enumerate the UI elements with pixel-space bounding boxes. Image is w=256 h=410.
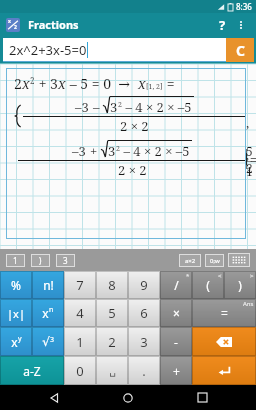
staticText: ( <box>206 277 210 293</box>
staticText: √ <box>42 335 50 349</box>
staticText: Fractions <box>28 17 79 32</box>
button[interactable]: = <box>192 299 256 327</box>
staticText: ) <box>238 277 242 293</box>
button[interactable]: 8 <box>96 271 128 299</box>
staticText: % <box>11 277 21 293</box>
button[interactable]: % <box>0 271 32 299</box>
staticText: 2 <box>14 74 22 93</box>
button[interactable]: ␣ <box>96 356 128 385</box>
button[interactable]: 2 <box>14 74 246 239</box>
staticText: [1, 2] <box>146 82 163 92</box>
staticText: n! <box>43 277 54 293</box>
button[interactable]: 5 <box>96 299 128 327</box>
staticText: × <box>173 305 180 321</box>
button[interactable]: ( <box>192 271 224 299</box>
button[interactable]: 0 <box>64 356 96 385</box>
button[interactable]: Help <box>212 15 232 35</box>
staticText: C <box>236 41 245 60</box>
staticText: 3 <box>108 142 116 160</box>
button[interactable]: 3 <box>128 327 160 356</box>
staticText: x <box>58 74 66 93</box>
staticText: 8 <box>108 276 116 294</box>
button[interactable]: 7 <box>64 271 96 299</box>
staticText: 2 × 2 <box>118 161 147 179</box>
staticText: ? <box>219 16 226 34</box>
button[interactable]: Backspace <box>192 327 256 356</box>
staticText: 0 <box>76 362 84 380</box>
staticText: + <box>173 363 180 379</box>
button[interactable]: 2x^2+3x-5=0 <box>3 38 226 62</box>
staticText: a×2 <box>185 257 196 265</box>
button[interactable]: 6 <box>128 299 160 327</box>
staticText: 2 <box>118 100 122 110</box>
staticText: x <box>22 74 30 93</box>
staticText: 2 <box>116 144 120 154</box>
staticText: 3 <box>50 335 55 345</box>
staticText: 3 <box>140 333 148 351</box>
staticText: –3 <box>72 142 90 160</box>
button[interactable]: √ <box>32 327 64 356</box>
staticText: x <box>8 18 11 25</box>
button[interactable]: |x| <box>0 299 32 327</box>
button[interactable]: 4 <box>64 299 96 327</box>
staticText: ) <box>39 255 42 266</box>
button[interactable]: More options <box>232 16 250 34</box>
staticText: Ans <box>243 300 254 308</box>
staticText: = <box>163 74 175 93</box>
staticText: < <box>218 272 222 280</box>
button[interactable]: Enter <box>192 356 256 385</box>
button[interactable]: a-Z <box>0 356 64 385</box>
button[interactable]: Insert matrix <box>179 254 201 267</box>
staticText: 4 <box>76 304 84 322</box>
staticText: 2 <box>108 333 116 351</box>
button[interactable]: Variables <box>205 254 224 267</box>
staticText: * <box>186 272 190 280</box>
staticText: 8:36 <box>236 1 252 12</box>
button[interactable]: ) <box>31 254 50 267</box>
button[interactable]: 3 <box>56 254 75 267</box>
button[interactable]: C <box>226 38 254 62</box>
staticText: 1 <box>76 333 84 351</box>
staticText: ␣ <box>109 364 116 377</box>
staticText: 3 <box>110 98 118 116</box>
button[interactable]: / <box>160 271 192 299</box>
button[interactable]: 9 <box>128 271 160 299</box>
staticText: 2 × 2 <box>120 117 149 135</box>
staticText: – 4 × 2 × –5 <box>120 142 190 160</box>
staticText: – 4 × 2 × –5 <box>122 98 192 116</box>
button[interactable]: x <box>0 327 32 356</box>
button[interactable]: - <box>160 327 192 356</box>
button[interactable]: x <box>32 299 64 327</box>
button[interactable]: Home <box>108 385 148 410</box>
button[interactable]: 2 <box>96 327 128 356</box>
staticText: 3 <box>63 255 68 266</box>
staticText: 2 <box>14 24 17 31</box>
button[interactable]: ) <box>224 271 256 299</box>
staticText: a-Z <box>23 363 41 379</box>
button[interactable]: Hide keyboard <box>228 253 250 267</box>
staticText: - <box>174 334 178 350</box>
button[interactable]: n! <box>32 271 64 299</box>
staticText: 2 <box>30 75 35 86</box>
staticText: –3 <box>75 98 93 116</box>
button[interactable]: . <box>128 356 160 385</box>
staticText: n <box>49 305 54 315</box>
staticText: . <box>142 362 146 380</box>
staticText: / <box>174 277 179 293</box>
staticText: – <box>93 98 103 116</box>
staticText: – 5 = 0 → <box>66 74 138 93</box>
staticText: 9 <box>140 276 148 294</box>
staticText: 2x^2+3x-5=0 <box>9 41 87 59</box>
staticText: x <box>138 74 146 93</box>
button[interactable]: × <box>160 299 192 327</box>
staticText: |x| <box>7 306 25 321</box>
button[interactable]: 1 <box>6 254 25 267</box>
button[interactable]: + <box>160 356 192 385</box>
button[interactable]: 1 <box>64 327 96 356</box>
staticText: = <box>221 305 228 321</box>
staticText: x <box>11 334 18 350</box>
button[interactable]: Recent apps <box>182 385 222 410</box>
staticText: y <box>18 334 22 344</box>
button[interactable]: Back <box>34 385 74 410</box>
staticText: + 3 <box>35 74 58 93</box>
